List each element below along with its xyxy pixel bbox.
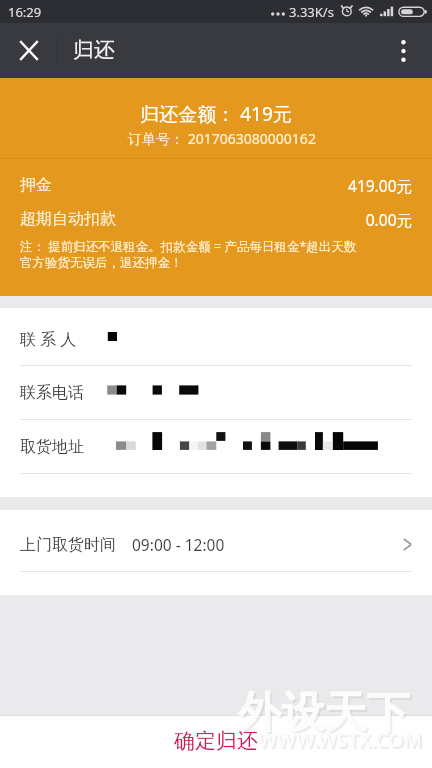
- button[interactable]: 联 系 人: [0, 308, 432, 365]
- staticText: 订单号： 2017063080000162: [6, 129, 432, 148]
- staticText: WWW.WSTX.COM: [260, 728, 424, 755]
- staticText: WWW.WSTX.COM: [258, 726, 422, 753]
- staticText: 上门取货时间: [20, 535, 116, 555]
- button[interactable]: 联系电话: [0, 366, 432, 419]
- staticText: 超期自动扣款: [20, 209, 116, 229]
- button[interactable]: More options: [374, 23, 432, 78]
- staticText: 外设天下: [238, 686, 410, 740]
- staticText: 归还金额： 419元: [0, 101, 432, 127]
- staticText: 外设天下: [240, 688, 412, 742]
- staticText: 联 系 人: [20, 328, 77, 350]
- staticText: 09:00 - 12:00: [132, 534, 225, 555]
- staticText: 取货地址: [20, 437, 84, 457]
- staticText: 联系电话: [20, 383, 84, 403]
- staticText: 419.00元: [60, 175, 412, 196]
- staticText: 归还: [73, 37, 115, 63]
- staticText: 确定归还: [174, 728, 258, 754]
- button[interactable]: 上门取货时间: [0, 510, 432, 571]
- staticText: 押金: [20, 175, 52, 195]
- button[interactable]: Close: [0, 23, 57, 78]
- staticText: 官方验货无误后，退还押金！: [20, 255, 183, 271]
- button[interactable]: 确定归还: [0, 716, 432, 768]
- staticText: 16:29: [8, 3, 42, 21]
- button[interactable]: 取货地址: [0, 420, 432, 473]
- staticText: 3.33K/s: [289, 3, 334, 21]
- staticText: 0.00元: [124, 209, 412, 230]
- staticText: 注： 提前归还不退租金。扣款金额 = 产品每日租金*超出天数: [20, 238, 357, 255]
